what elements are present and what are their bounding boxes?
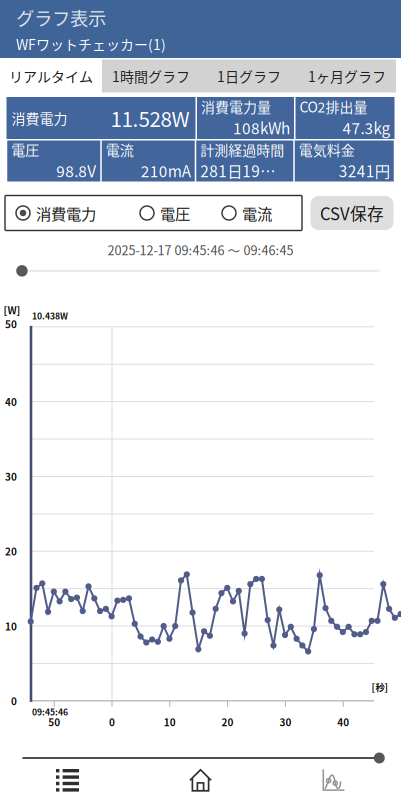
staticText: 電圧 [11,139,39,160]
button[interactable]: 電流 [222,194,272,232]
staticText: 0 [11,694,17,708]
staticText: 50 [48,715,60,729]
staticText: 30 [279,715,291,729]
staticText: [秒] [371,680,388,694]
staticText: 20 [222,715,234,729]
staticText: 108kWh [233,116,290,139]
staticText: 10.438W [32,310,68,322]
staticText: 20 [5,544,17,558]
staticText: 11.528W [110,103,189,133]
staticText: 消費電力量 [201,96,271,117]
staticText: 40 [5,394,17,409]
button[interactable]: 消費電力 [16,194,96,232]
staticText: 0 [109,715,115,729]
button[interactable]: 1ヶ月グラフ [298,59,396,92]
staticText: 281日19時間... [200,159,289,182]
staticText: リアルタイム [9,66,93,86]
staticText: 47.3kg [342,116,390,139]
button[interactable]: CSV保存 [310,196,393,230]
staticText: 1ヶ月グラフ [308,66,386,86]
staticText: 消費電力 [36,202,96,224]
staticText: 10 [5,619,17,633]
button[interactable]: 1日グラフ [200,59,298,92]
staticText: 40 [337,715,349,729]
button[interactable]: リアルタイム [0,58,102,94]
staticText: CSV保存 [320,201,384,225]
button[interactable]: List [0,766,135,794]
staticText: 電流 [106,139,134,160]
staticText: 10 [164,715,176,729]
staticText: [W] [3,303,20,317]
staticText: CO2排出量 [299,96,367,117]
staticText: 電圧 [160,202,190,224]
staticText: 1時間グラフ [112,66,190,86]
staticText: 98.8V [56,159,96,182]
staticText: WFワットチェッカー(1) [16,34,166,54]
staticText: 電気料金 [299,139,355,160]
button[interactable]: 1時間グラフ [102,59,200,92]
staticText: 消費電力 [11,108,67,128]
staticText: 30 [5,469,17,484]
button[interactable]: 電圧 [140,194,190,232]
staticText: 3241円 [339,159,390,182]
staticText: 1日グラフ [217,66,281,86]
staticText: 50 [5,317,17,331]
staticText: 電流 [242,202,272,224]
staticText: 210mA [141,159,191,182]
button[interactable]: Graph [266,766,401,794]
button[interactable]: Home [135,766,266,794]
staticText: 09:45:46 [32,706,68,718]
staticText: 2025-12-17 09:45:46 〜 09:46:45 [107,240,293,259]
staticText: グラフ表示 [16,4,106,31]
staticText: 計測経過時間 [200,139,284,160]
